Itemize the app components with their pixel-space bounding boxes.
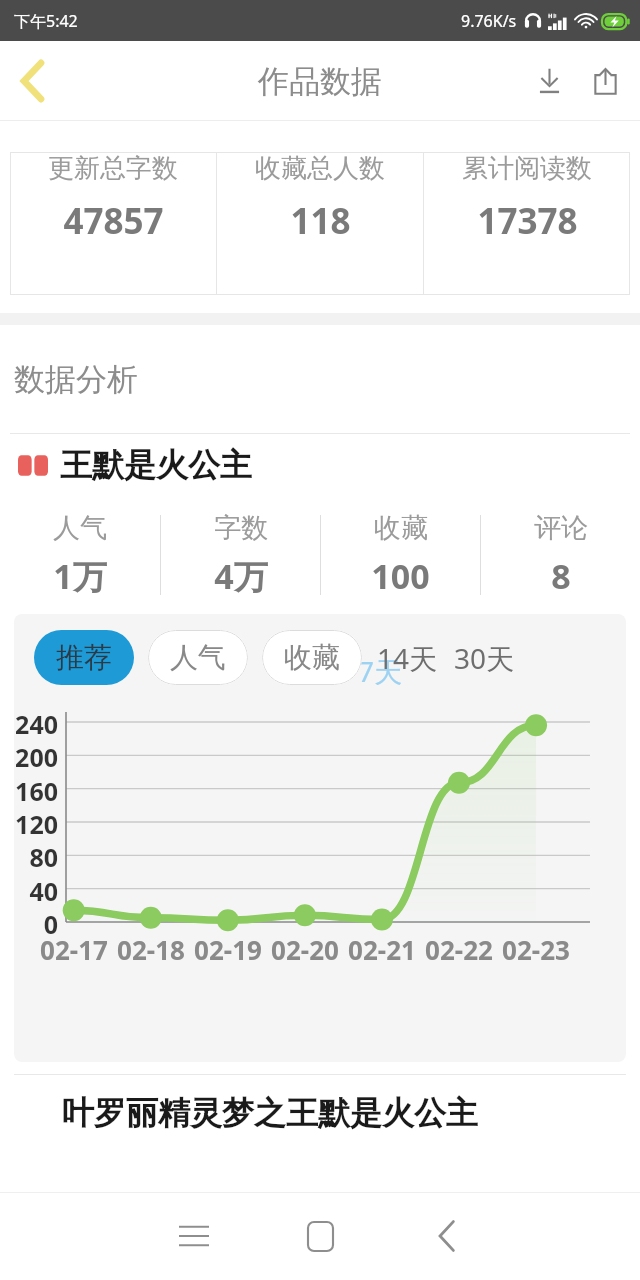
button[interactable]: 收藏 [262,630,362,685]
button[interactable]: 30天 [451,631,518,685]
button[interactable]: 人气 [0,511,160,599]
staticText: 7天 [358,652,403,690]
staticText: 118 [290,197,351,245]
button[interactable]: 收藏 [321,511,480,599]
staticText: 9.76K/s [461,10,517,32]
staticText: 0 [43,907,58,941]
button[interactable]: 人气 [148,630,248,685]
staticText: 人气 [170,640,226,675]
button[interactable]: 字数 [161,511,320,599]
staticText: 字数 [214,511,268,545]
staticText: 47857 [63,197,164,245]
staticText: 下午5:42 [14,10,78,32]
staticText: 17378 [477,197,578,245]
staticText: 02-22 [425,932,493,967]
staticText: 叶罗丽精灵梦之王默是火公主 [62,1093,478,1133]
staticText: 收藏总人数 [255,152,385,185]
staticText: 评论 [534,511,588,545]
button[interactable]: Download [522,41,576,121]
staticText: 100 [371,553,430,599]
button[interactable]: Share [576,41,634,121]
button[interactable]: Back [0,41,64,121]
staticText: 更新总字数 [48,152,178,185]
staticText: 160 [15,774,58,808]
button[interactable]: 累计阅读数 [424,152,630,245]
staticText: 240 [15,707,58,741]
staticText: 8 [551,553,571,599]
button[interactable]: Back [386,1192,506,1280]
staticText: 80 [29,840,58,874]
staticText: 02-18 [117,932,185,967]
staticText: 4万 [214,553,268,599]
staticText: 作品数据 [258,62,382,101]
staticText: 02-23 [502,932,570,967]
staticText: 数据分析 [14,360,138,399]
button[interactable]: Home [260,1192,380,1280]
button[interactable]: Recent apps [134,1192,254,1280]
staticText: 14天 [377,639,438,677]
staticText: 200 [15,740,58,774]
button[interactable]: 收藏总人数 [217,152,423,245]
staticText: 120 [15,807,58,841]
staticText: 40 [29,874,58,908]
staticText: 收藏 [374,511,428,545]
staticText: 累计阅读数 [462,152,592,185]
button[interactable]: 评论 [481,511,640,599]
staticText: 02-17 [40,932,108,967]
staticText: 1万 [53,553,107,599]
button[interactable]: 推荐 [34,630,134,685]
staticText: 30天 [454,639,515,677]
staticText: 02-21 [348,932,416,967]
button[interactable]: 更新总字数 [10,152,216,245]
staticText: 王默是火公主 [60,445,252,485]
button[interactable]: 14天 [374,631,441,685]
button[interactable]: 叶罗丽精灵梦之王默是火公主 [0,1075,640,1135]
staticText: 人气 [53,511,107,545]
button[interactable]: 王默是火公主 [0,434,640,496]
staticText: 02-20 [271,932,339,967]
staticText: 推荐 [56,640,112,675]
staticText: 02-19 [194,932,262,967]
staticText: 收藏 [284,640,340,675]
